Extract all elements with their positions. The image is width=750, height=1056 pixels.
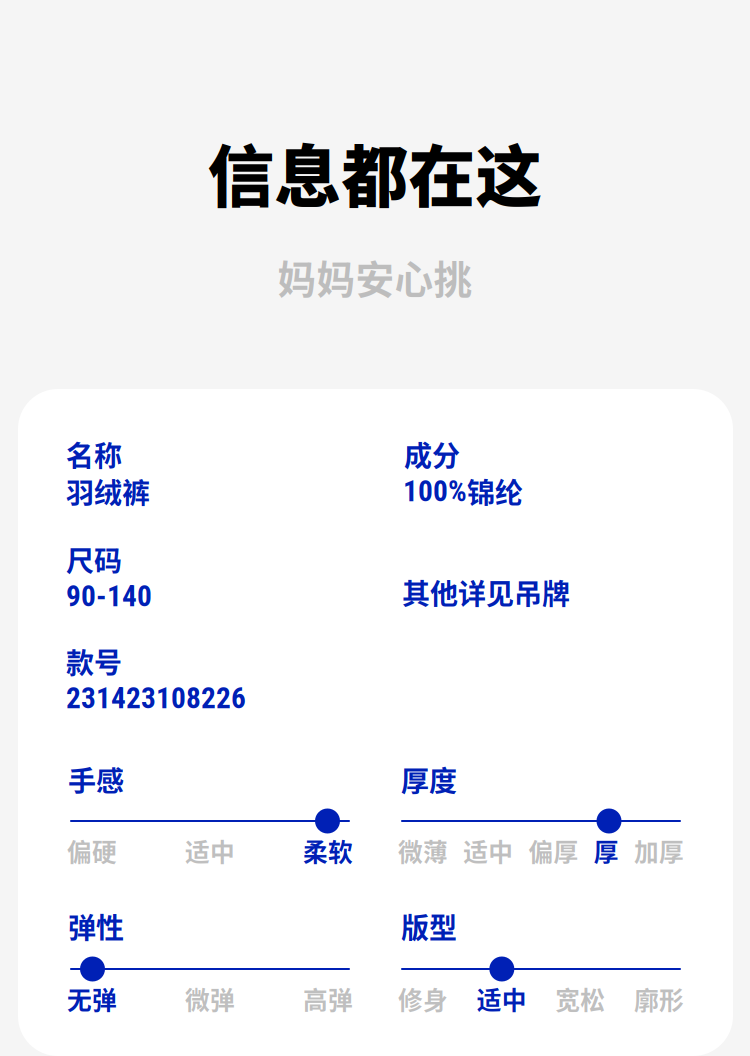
button[interactable]: 宽松 <box>555 981 605 1017</box>
button[interactable]: 适中 <box>463 833 513 869</box>
button[interactable]: 高弹 <box>303 981 353 1017</box>
staticText: 231423108226 <box>66 681 246 715</box>
staticText: 锦纶 <box>467 471 523 511</box>
button[interactable]: 厚 <box>594 833 619 869</box>
button[interactable]: 加厚 <box>634 833 684 869</box>
staticText: 弹性 <box>68 906 124 946</box>
staticText: 100% <box>403 474 467 508</box>
staticText: 宽松 <box>555 981 605 1017</box>
button[interactable]: 廓形 <box>634 981 684 1017</box>
button[interactable]: 偏硬 <box>67 833 117 869</box>
button[interactable]: 修身 <box>398 981 448 1017</box>
staticText: 廓形 <box>634 981 684 1017</box>
button[interactable]: 微薄 <box>398 833 448 869</box>
staticText: 高弹 <box>303 981 353 1017</box>
button[interactable]: 适中 <box>185 833 235 869</box>
staticText: 厚 <box>594 833 619 869</box>
staticText: 尺码 <box>66 539 122 579</box>
staticText: 版型 <box>401 906 457 946</box>
staticText: 偏厚 <box>528 833 578 869</box>
button[interactable]: 微弹 <box>185 981 235 1017</box>
staticText: 手感 <box>68 759 124 799</box>
button[interactable]: 偏厚 <box>528 833 578 869</box>
staticText: 90-140 <box>66 579 152 613</box>
staticText: 修身 <box>398 981 448 1017</box>
button[interactable]: 适中 <box>477 981 527 1017</box>
staticText: 款号 <box>66 641 122 681</box>
staticText: 其他详见吊牌 <box>402 572 570 612</box>
staticText: 适中 <box>477 981 527 1017</box>
staticText: 羽绒裤 <box>66 471 150 511</box>
button[interactable]: 无弹 <box>67 981 117 1017</box>
staticText: 厚度 <box>401 759 457 799</box>
staticText: 名称 <box>66 434 122 474</box>
staticText: 柔软 <box>303 833 353 869</box>
staticText: 信息都在这 <box>207 124 542 220</box>
staticText: 偏硬 <box>67 833 117 869</box>
staticText: 无弹 <box>67 981 117 1017</box>
staticText: 微薄 <box>398 833 448 869</box>
staticText: 加厚 <box>634 833 684 869</box>
staticText: 妈妈安心挑 <box>277 249 472 305</box>
staticText: 适中 <box>463 833 513 869</box>
staticText: 成分 <box>404 434 460 474</box>
staticText: 适中 <box>185 833 235 869</box>
button[interactable]: 柔软 <box>303 833 353 869</box>
staticText: 微弹 <box>185 981 235 1017</box>
